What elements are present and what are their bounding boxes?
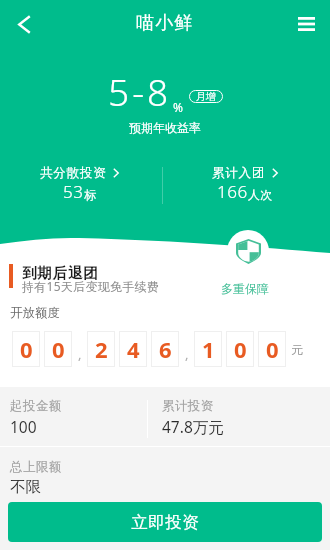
- staticText: 0: [234, 334, 247, 364]
- staticText: 月增: [196, 90, 216, 103]
- staticText: 0: [266, 334, 279, 364]
- staticText: 5-8: [108, 66, 172, 116]
- staticText: 53: [63, 180, 84, 203]
- staticText: 2: [95, 334, 108, 364]
- staticText: 到期后退团: [22, 264, 99, 282]
- staticText: ,: [185, 345, 189, 363]
- staticText: 元: [291, 342, 303, 357]
- staticText: 标: [84, 187, 96, 202]
- staticText: 多重保障: [221, 281, 269, 296]
- staticText: 人次: [248, 187, 272, 202]
- staticText: 166: [217, 180, 248, 203]
- staticText: %: [173, 99, 183, 115]
- button[interactable]: 总上限额: [10, 459, 62, 495]
- button[interactable]: 起投金额: [10, 398, 62, 435]
- button[interactable]: 累计投资: [162, 398, 224, 435]
- staticText: 0: [20, 334, 33, 364]
- button[interactable]: Back: [0, 0, 48, 48]
- staticText: ,: [78, 345, 82, 363]
- staticText: 累计投资: [162, 398, 214, 414]
- button[interactable]: 月增: [189, 90, 223, 103]
- staticText: 47.8万元: [162, 416, 224, 437]
- button[interactable]: 共分散投资: [0, 165, 162, 204]
- button[interactable]: Menu: [282, 0, 330, 48]
- staticText: 预期年收益率: [0, 120, 330, 135]
- staticText: 0: [52, 334, 65, 364]
- staticText: 不限: [10, 477, 41, 497]
- staticText: 1: [202, 334, 215, 364]
- staticText: 6: [159, 334, 172, 364]
- staticText: 起投金额: [10, 398, 62, 414]
- staticText: 100: [10, 416, 37, 437]
- staticText: 立即投资: [131, 512, 199, 533]
- staticText: 开放额度: [10, 305, 60, 321]
- button[interactable]: 多重保障: [227, 230, 269, 272]
- staticText: 累计入团: [212, 165, 266, 181]
- staticText: 持有15天后变现免手续费: [22, 278, 160, 294]
- staticText: 喵小鲜: [136, 12, 194, 35]
- button[interactable]: 累计入团: [162, 165, 327, 204]
- staticText: 总上限额: [10, 459, 62, 475]
- button[interactable]: 立即投资: [8, 502, 322, 542]
- staticText: 共分散投资: [40, 165, 107, 181]
- staticText: 4: [127, 334, 140, 364]
